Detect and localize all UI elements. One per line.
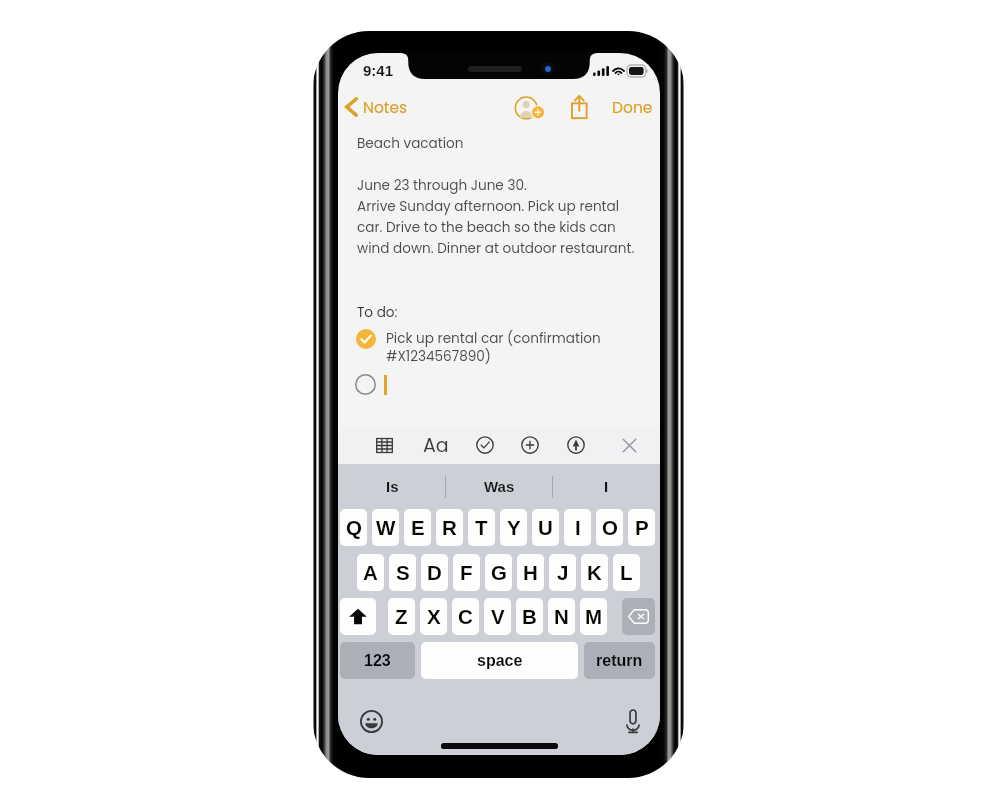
staticText: Q: [346, 516, 362, 539]
button[interactable]: Markup: [560, 426, 592, 464]
button[interactable]: O: [596, 509, 623, 546]
staticText: C: [458, 605, 473, 628]
staticText: Aa: [423, 432, 449, 459]
staticText: Beach vacation: [357, 134, 464, 153]
staticText: E: [411, 516, 425, 539]
button[interactable]: Notes: [340, 91, 410, 125]
staticText: W: [376, 516, 396, 539]
button[interactable]: W: [372, 509, 399, 546]
button[interactable]: return: [584, 642, 655, 679]
button[interactable]: Hide keyboard: [613, 426, 645, 464]
button[interactable]: A: [357, 554, 384, 591]
staticText: Pick up rental car (confirmation #X12345…: [386, 329, 601, 366]
staticText: F: [460, 561, 473, 584]
button[interactable]: Is: [338, 464, 446, 509]
button[interactable]: V: [484, 598, 511, 635]
staticText: X: [427, 605, 441, 628]
button[interactable]: J: [549, 554, 576, 591]
button[interactable]: M: [580, 598, 607, 635]
staticText: Was: [484, 478, 515, 495]
button[interactable]: X: [420, 598, 447, 635]
button[interactable]: Pick up rental car (confirmation #X12345…: [352, 326, 660, 372]
button[interactable]: Backspace: [622, 598, 655, 635]
staticText: To do:: [357, 303, 398, 322]
button[interactable]: S: [389, 554, 416, 591]
staticText: S: [396, 561, 410, 584]
button[interactable]: G: [485, 554, 512, 591]
button[interactable]: U: [532, 509, 559, 546]
button[interactable]: Y: [500, 509, 527, 546]
button[interactable]: space: [421, 642, 578, 679]
button[interactable]: [351, 369, 660, 401]
button[interactable]: P: [628, 509, 655, 546]
staticText: Y: [507, 516, 521, 539]
button[interactable]: F: [453, 554, 480, 591]
staticText: J: [557, 561, 569, 584]
staticText: L: [620, 561, 633, 584]
staticText: G: [491, 561, 507, 584]
button[interactable]: D: [421, 554, 448, 591]
button[interactable]: Aa: [420, 426, 452, 464]
button[interactable]: Table: [368, 426, 400, 464]
button[interactable]: Shift: [340, 598, 376, 635]
staticText: June 23 through June 30. Arrive Sunday a…: [357, 176, 635, 258]
staticText: R: [442, 516, 457, 539]
staticText: D: [427, 561, 442, 584]
staticText: H: [523, 561, 538, 584]
staticText: 123: [364, 652, 391, 670]
staticText: A: [363, 561, 378, 584]
button[interactable]: K: [581, 554, 608, 591]
staticText: return: [596, 652, 643, 670]
button[interactable]: H: [517, 554, 544, 591]
staticText: P: [635, 516, 649, 539]
staticText: Is: [386, 478, 399, 495]
staticText: K: [587, 561, 602, 584]
staticText: Notes: [363, 97, 408, 119]
staticText: U: [538, 516, 553, 539]
staticText: T: [475, 516, 488, 539]
staticText: O: [602, 516, 618, 539]
staticText: M: [585, 605, 603, 628]
staticText: V: [491, 605, 505, 628]
staticText: I: [575, 516, 581, 539]
button[interactable]: B: [516, 598, 543, 635]
button[interactable]: L: [613, 554, 640, 591]
button[interactable]: Add people: [510, 91, 548, 125]
button[interactable]: E: [404, 509, 431, 546]
button[interactable]: Checklist: [469, 426, 501, 464]
staticText: 9:41: [363, 62, 394, 79]
button[interactable]: I: [564, 509, 591, 546]
button[interactable]: N: [548, 598, 575, 635]
staticText: B: [522, 605, 537, 628]
button[interactable]: Emoji: [359, 709, 383, 733]
button[interactable]: Q: [340, 509, 367, 546]
button[interactable]: R: [436, 509, 463, 546]
staticText: I: [604, 478, 609, 495]
button[interactable]: T: [468, 509, 495, 546]
staticText: Done: [612, 97, 653, 119]
button[interactable]: Done: [606, 92, 659, 124]
button[interactable]: C: [452, 598, 479, 635]
button[interactable]: Was: [446, 464, 553, 509]
button[interactable]: I: [553, 464, 660, 509]
button[interactable]: Share: [564, 89, 595, 125]
button[interactable]: Z: [388, 598, 415, 635]
button[interactable]: 123: [340, 642, 415, 679]
button[interactable]: Dictate: [621, 709, 645, 733]
staticText: N: [554, 605, 569, 628]
staticText: space: [477, 652, 523, 670]
staticText: Z: [395, 605, 408, 628]
button[interactable]: Add attachment: [514, 426, 546, 464]
